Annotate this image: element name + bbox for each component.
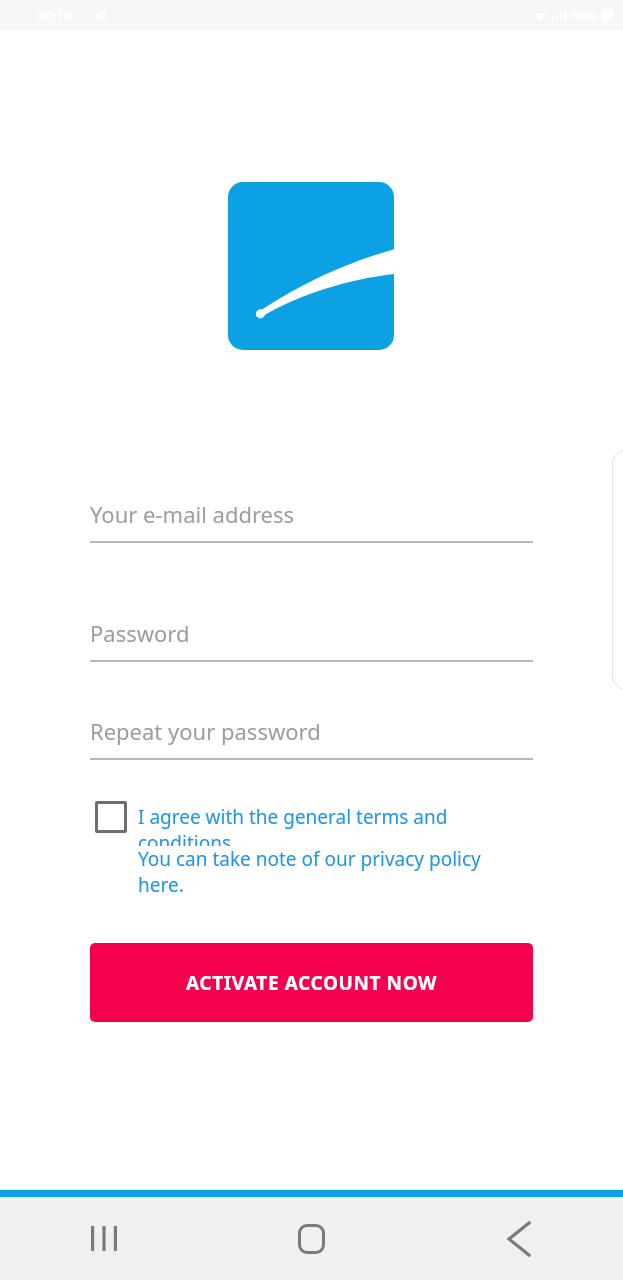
button[interactable]: ACTIVATE ACCOUNT NOW [90,943,533,1022]
staticText: G [96,6,107,25]
button[interactable]: Your e-mail address [90,497,533,543]
staticText: Password [90,618,190,648]
staticText: ACTIVATE ACCOUNT NOW [186,970,438,996]
button[interactable]: You can take note of our privacy policy … [138,846,518,898]
button[interactable]: Agree to terms checkbox [95,801,127,833]
button[interactable]: Home [207,1197,415,1280]
button[interactable]: I agree with the general terms and condi… [138,804,488,846]
staticText: You can take note of our privacy policy … [138,846,518,898]
staticText: 80% [571,6,597,24]
button[interactable]: Repeat your password [90,714,533,760]
staticText: I agree with the general terms and condi… [138,804,488,846]
staticText: 08:18 [36,6,72,25]
button[interactable]: Recent apps [0,1197,207,1280]
button[interactable]: Back [415,1197,623,1280]
button[interactable]: Password [90,616,533,662]
staticText: Repeat your password [90,716,321,746]
staticText: Your e-mail address [90,499,295,529]
